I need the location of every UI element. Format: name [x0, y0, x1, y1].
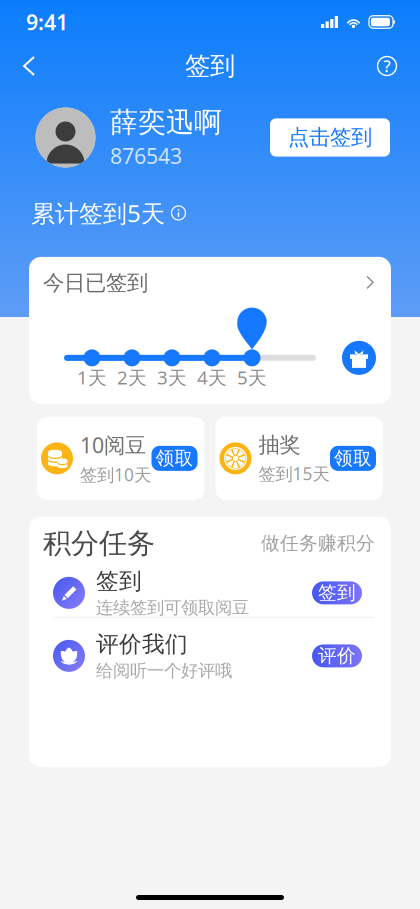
- staticText: 1天: [77, 365, 107, 390]
- staticText: 薛奕迅啊: [110, 105, 222, 139]
- staticText: 连续签到可领取阅豆: [96, 597, 249, 618]
- staticText: 今日已签到: [43, 270, 148, 296]
- staticText: 3天: [157, 365, 187, 390]
- button[interactable]: Help: [364, 44, 410, 88]
- staticText: 10阅豆: [80, 431, 146, 459]
- staticText: 给阅听一个好评哦: [96, 660, 232, 681]
- button[interactable]: 今日已签到: [29, 257, 391, 309]
- staticText: 签到: [185, 50, 235, 81]
- staticText: 签到10天: [80, 463, 151, 486]
- staticText: 签到15天: [258, 462, 329, 485]
- staticText: 积分任务: [43, 526, 155, 561]
- staticText: 领取: [155, 447, 193, 470]
- staticText: 点击签到: [288, 124, 372, 151]
- staticText: 4天: [197, 365, 227, 390]
- staticText: 做任务赚积分: [261, 532, 375, 555]
- button[interactable]: 评价我们: [29, 640, 391, 672]
- button[interactable]: Back: [10, 44, 48, 88]
- staticText: 2天: [117, 365, 147, 390]
- button[interactable]: 领取: [151, 446, 197, 471]
- staticText: 领取: [334, 447, 372, 470]
- staticText: 评价: [318, 644, 356, 667]
- staticText: 签到: [318, 581, 356, 604]
- button[interactable]: 点击签到: [270, 118, 390, 157]
- staticText: 签到: [96, 567, 142, 595]
- button[interactable]: 签到: [29, 577, 391, 609]
- staticText: 累计签到5天: [31, 197, 165, 229]
- staticText: 评价我们: [96, 630, 188, 658]
- button[interactable]: 领取: [330, 446, 376, 471]
- staticText: ?: [383, 55, 390, 77]
- staticText: 876543: [110, 141, 182, 170]
- staticText: 5天: [237, 365, 267, 390]
- staticText: 9:41: [26, 8, 68, 36]
- staticText: 抽奖: [258, 432, 300, 458]
- button[interactable]: 领取礼物: [342, 341, 376, 375]
